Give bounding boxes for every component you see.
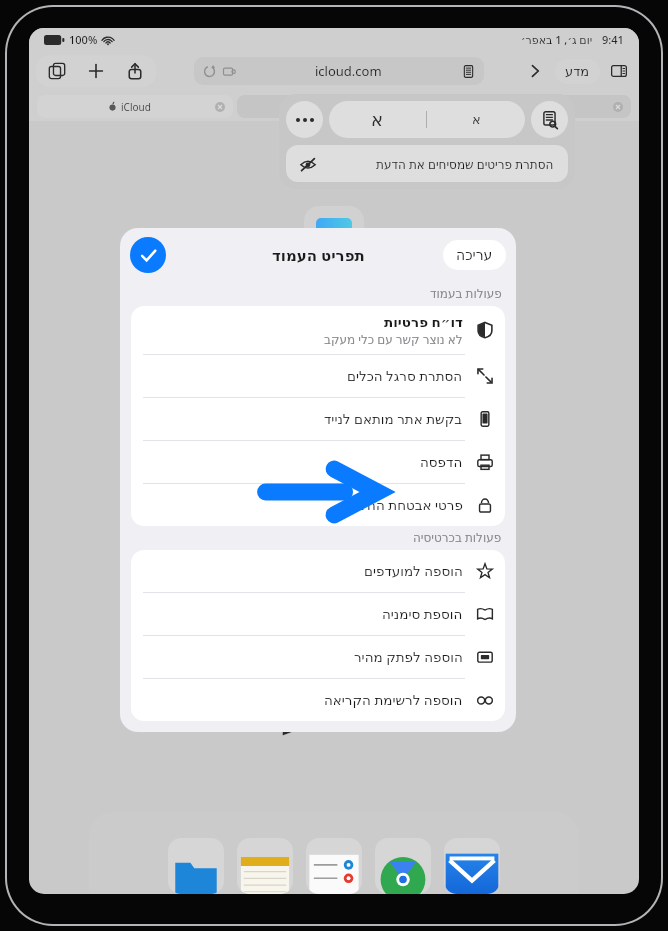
- button[interactable]: Share: [122, 58, 148, 84]
- staticText: פעולות בעמוד: [430, 285, 502, 301]
- staticText: מדע: [565, 64, 590, 79]
- staticText: An…: [524, 100, 545, 114]
- button[interactable]: הוספה למועדפים: [131, 550, 505, 592]
- staticText: הסתרת פריטים שמסיחים את הדעת: [376, 156, 554, 172]
- button[interactable]: Forward: [522, 58, 548, 84]
- button[interactable]: עריכה: [443, 240, 506, 270]
- button[interactable]: מדע: [555, 59, 600, 84]
- button[interactable]: Mail: [444, 838, 500, 894]
- button[interactable]: Find on page: [531, 101, 568, 138]
- button[interactable]: Reminders: [306, 838, 362, 894]
- staticText: 9:41: [602, 32, 624, 47]
- button[interactable]: iCloud: [37, 95, 233, 118]
- staticText: 100%: [69, 32, 98, 47]
- staticText: פעולות בכרטיסיה: [413, 529, 502, 545]
- button[interactable]: Sidebar: [606, 58, 632, 84]
- button[interactable]: הסתרת סרגל הכלים: [131, 355, 505, 397]
- button[interactable]: New tab: [83, 58, 109, 84]
- staticText: הדואר ועוד.: [253, 700, 416, 741]
- button[interactable]: Done: [130, 237, 166, 273]
- button[interactable]: הדפסה: [131, 441, 505, 483]
- staticText: הוספה לפתק מהיר: [354, 648, 463, 666]
- button[interactable]: More: [286, 101, 323, 138]
- button[interactable]: G…: [237, 95, 432, 118]
- staticText: א: [371, 109, 384, 130]
- staticText: הסתרת סרגל הכלים: [347, 367, 463, 385]
- staticText: הוספה למועדפים: [364, 562, 463, 580]
- button[interactable]: Files: [168, 838, 224, 894]
- staticText: בקשת אתר מותאם לנייד: [324, 410, 463, 428]
- button[interactable]: Find My: [375, 838, 431, 894]
- button[interactable]: הוספת סימניה: [131, 593, 505, 635]
- button[interactable]: הסתרת פריטים שמסיחים את הדעת: [286, 145, 568, 182]
- button[interactable]: An…: [436, 95, 631, 118]
- staticText: icloud.com: [315, 62, 382, 80]
- staticText: עריכה: [456, 247, 493, 263]
- staticText: דו״ח פרטיות: [384, 313, 463, 331]
- staticText: הוספה לרשימת הקריאה: [324, 691, 463, 709]
- button[interactable]: א: [329, 101, 426, 138]
- button[interactable]: הוספה לרשימת הקריאה: [131, 679, 505, 721]
- button[interactable]: Tabs: [44, 58, 70, 84]
- button[interactable]: דו״ח פרטיות: [131, 306, 505, 354]
- staticText: א: [472, 112, 481, 127]
- button[interactable]: icloud.com: [194, 57, 484, 85]
- staticText: הוספת סימניה: [382, 605, 463, 623]
- staticText: iCloud: [121, 100, 151, 114]
- button[interactable]: Notes: [237, 838, 293, 894]
- staticText: פרטי אבטחת החיבור: [345, 496, 463, 514]
- staticText: יום ג׳, 1 באפר׳: [521, 32, 593, 47]
- button[interactable]: בקשת אתר מותאם לנייד: [131, 398, 505, 440]
- staticText: G…: [328, 100, 344, 114]
- button[interactable]: א: [427, 101, 525, 138]
- staticText: הדפסה: [420, 454, 463, 470]
- staticText: תפריט העמוד: [272, 245, 365, 265]
- button[interactable]: הוספה לפתק מהיר: [131, 636, 505, 678]
- button[interactable]: פרטי אבטחת החיבור: [131, 484, 505, 526]
- staticText: לא נוצר קשר עם כלי מעקב: [324, 331, 463, 347]
